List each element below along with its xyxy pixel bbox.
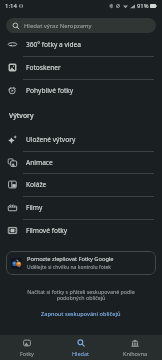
staticText: Pohyblivé fotky xyxy=(26,86,74,95)
staticText: 360° fotky a videa xyxy=(26,40,82,49)
staticText: Výtvory xyxy=(9,111,34,120)
button[interactable]: Filmové fotky xyxy=(0,219,162,242)
button[interactable]: Fotoskener xyxy=(0,56,162,79)
staticText: 91% xyxy=(137,2,149,10)
button[interactable]: Fotky xyxy=(0,339,54,357)
staticText: Hledat xyxy=(72,350,90,357)
button[interactable]: Zapnout seskupování obličejů xyxy=(35,308,127,320)
staticText: Filmové fotky xyxy=(26,226,68,235)
button[interactable]: Knihovna xyxy=(108,339,162,357)
staticText: Načítat si fotky s přáteli seskupované p… xyxy=(12,288,150,302)
staticText: Fotky xyxy=(20,350,34,357)
staticText: Filmy xyxy=(26,203,43,212)
button[interactable]: Pomozte zlepšovat Fotky Google xyxy=(6,251,156,275)
button[interactable]: Koláže xyxy=(0,173,162,196)
button[interactable]: Filmy xyxy=(0,196,162,219)
staticText: Fotoskener xyxy=(26,63,61,72)
staticText: Pomozte zlepšovat Fotky Google xyxy=(27,255,114,263)
staticText: Animace xyxy=(26,158,53,167)
button[interactable]: Uložené výtvory xyxy=(0,128,162,151)
button[interactable]: Hledat výraz Neropzamy xyxy=(6,18,156,33)
staticText: Udělejte si chvilku na kontrolu fotek xyxy=(27,264,112,271)
staticText: Uložené výtvory xyxy=(26,135,76,144)
staticText: Hledat výraz Neropzamy xyxy=(24,22,92,30)
staticText: 1:14 xyxy=(5,2,17,10)
button[interactable]: 360° fotky a videa xyxy=(0,33,162,56)
button[interactable]: Animace xyxy=(0,151,162,174)
staticText: Zapnout seskupování obličejů xyxy=(41,310,121,318)
button[interactable]: Pohyblivé fotky xyxy=(0,79,162,102)
button[interactable]: Hledat xyxy=(54,339,108,357)
staticText: Knihovna xyxy=(123,350,148,357)
staticText: Koláže xyxy=(26,180,47,189)
